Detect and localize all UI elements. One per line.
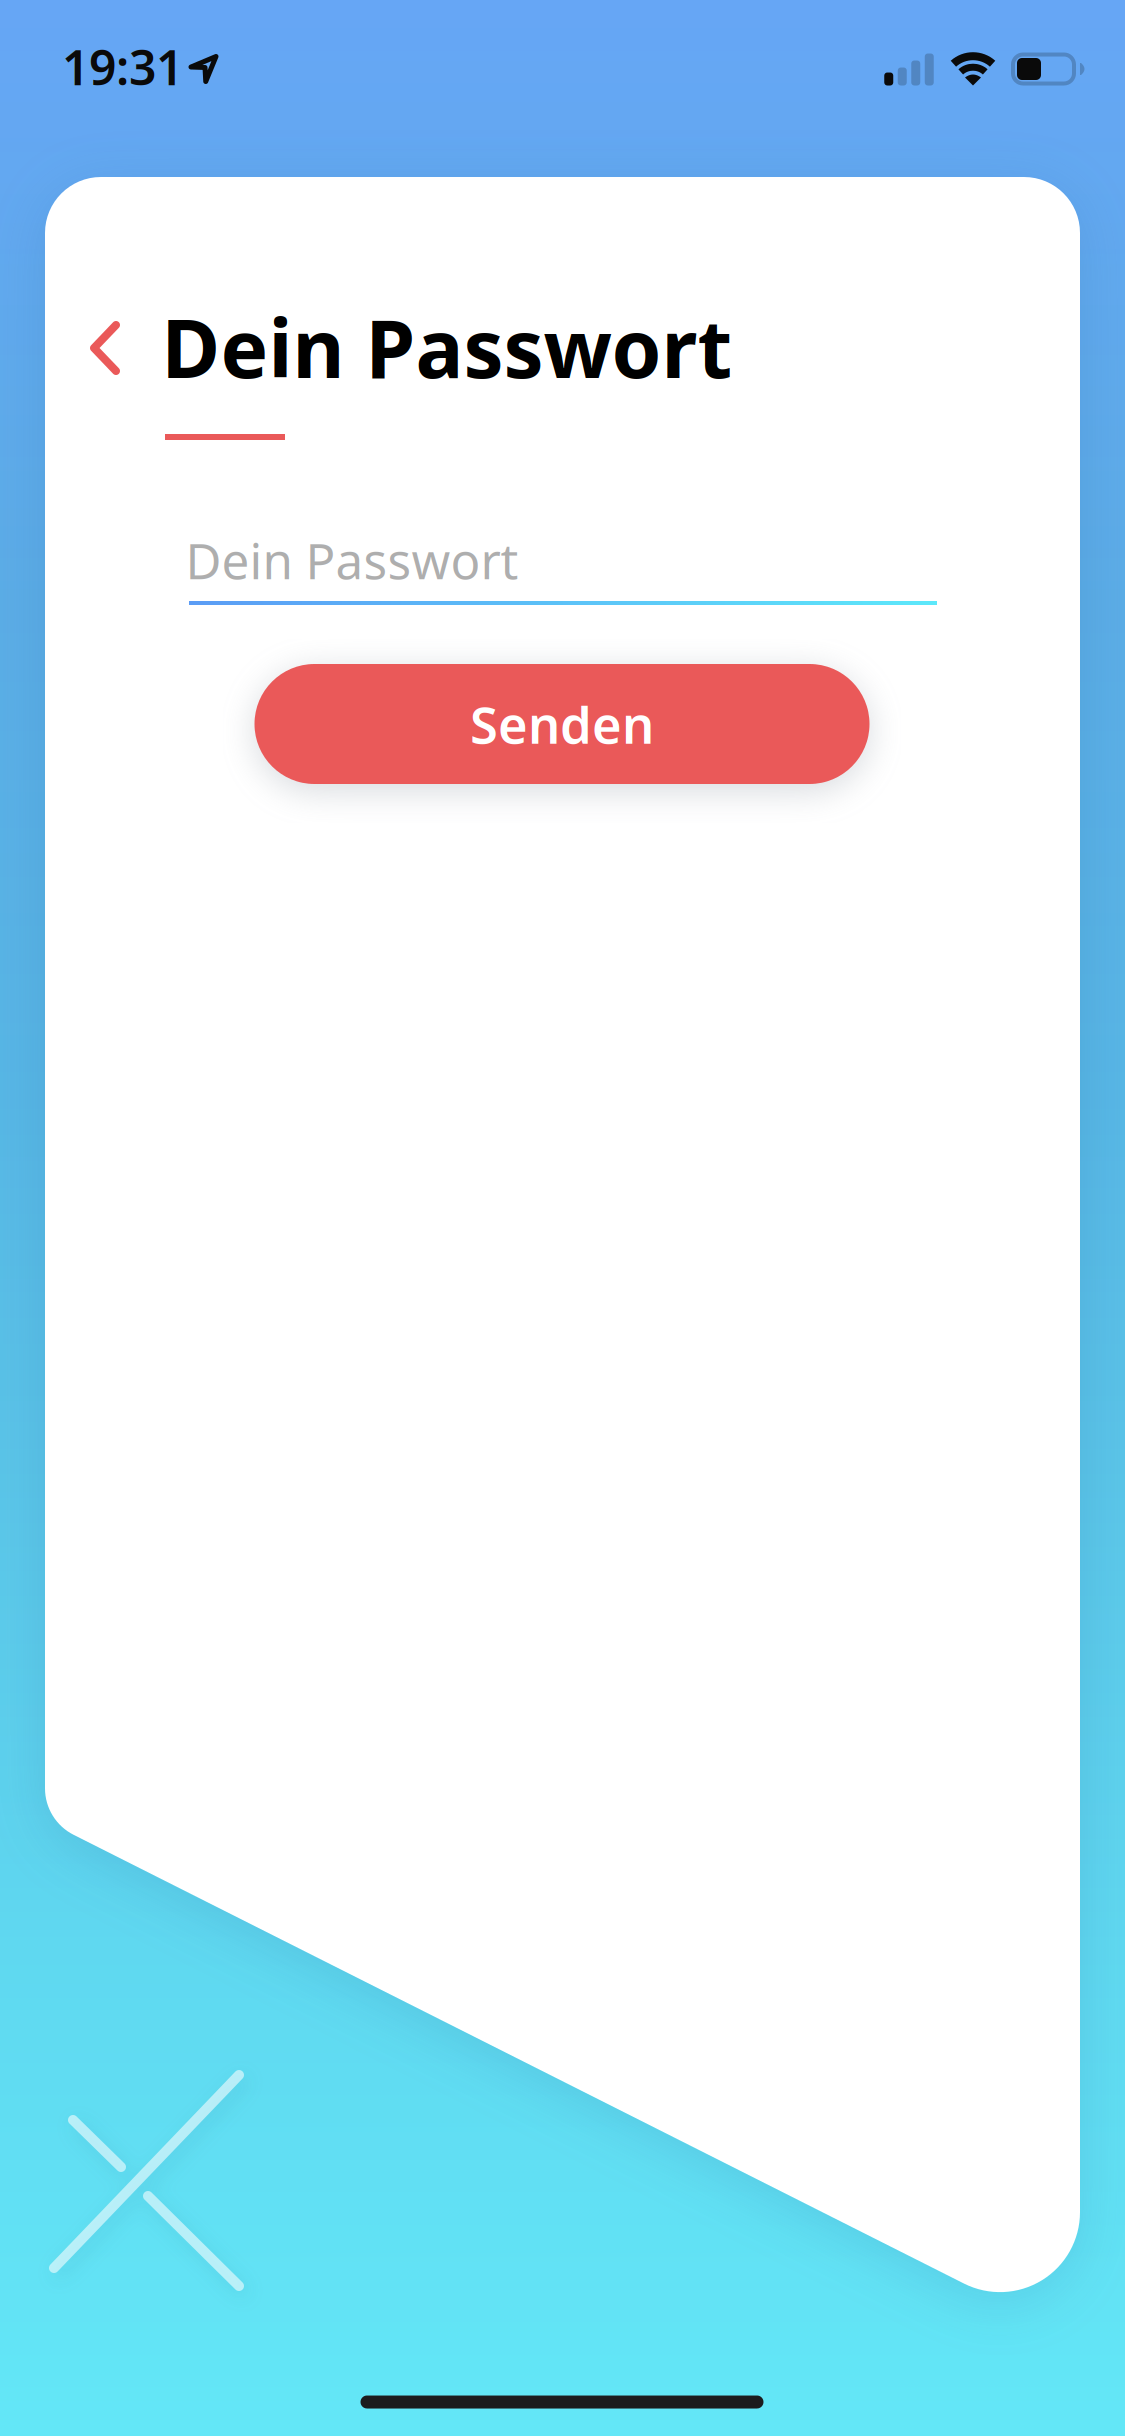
staticText: 19:31 [62,35,183,98]
staticText: Senden [470,690,654,758]
staticText: Dein Passwort [185,527,518,593]
button[interactable]: Back [64,295,146,401]
staticText: Dein Passwort [161,294,732,400]
button[interactable]: Senden [254,664,869,784]
